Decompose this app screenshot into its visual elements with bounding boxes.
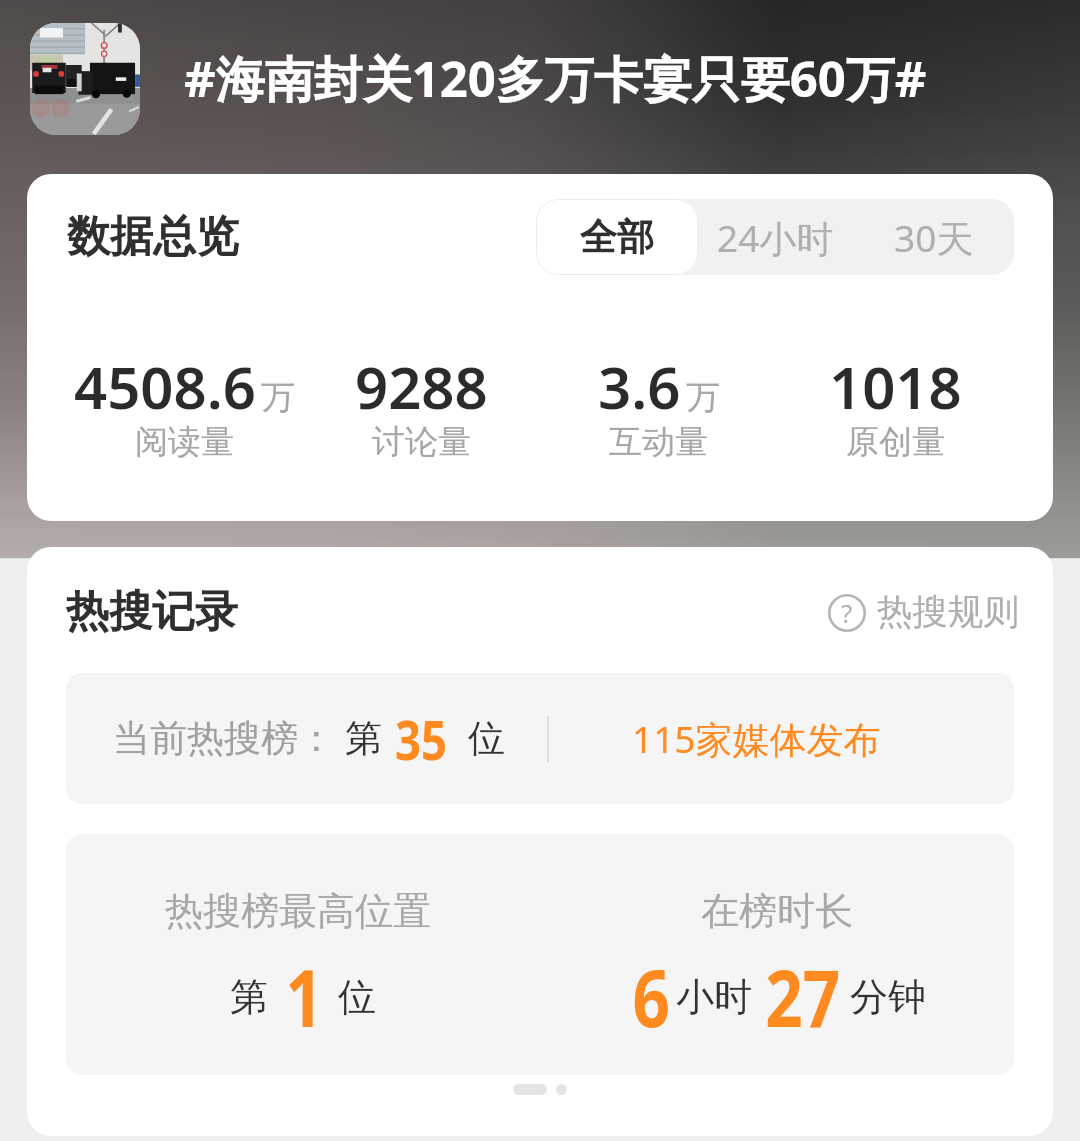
staticText: 第	[230, 973, 268, 1021]
staticText: 24小时	[717, 212, 834, 263]
staticText: 30天	[894, 212, 974, 263]
button[interactable]: 热搜榜最高位置	[66, 834, 540, 1075]
staticText: ?	[841, 595, 853, 630]
staticText: 热搜记录	[66, 585, 238, 639]
button[interactable]: 当前热搜榜：	[66, 673, 1014, 804]
staticText: 全部	[580, 214, 654, 261]
staticText: 万	[261, 376, 295, 419]
staticText: 小时	[676, 973, 752, 1021]
button[interactable]: 3.6	[540, 347, 777, 468]
staticText: 在榜时长	[701, 887, 853, 935]
staticText: 当前热搜榜：	[113, 715, 335, 762]
button[interactable]: #海南封关120多万卡宴只要60万#	[184, 0, 1054, 157]
button[interactable]: 全部	[536, 199, 698, 275]
staticText: 4508.6	[74, 347, 256, 426]
button[interactable]: Topic image	[30, 23, 140, 135]
button[interactable]: ?	[828, 590, 1019, 635]
staticText: 热搜规则	[877, 590, 1019, 635]
staticText: 阅读量	[135, 421, 234, 463]
button[interactable]: 9288	[303, 347, 540, 468]
button[interactable]: 在榜时长	[540, 834, 1014, 1075]
staticText: 互动量	[609, 421, 708, 463]
staticText: 分钟	[850, 973, 926, 1021]
staticText: 6	[633, 944, 670, 1050]
staticText: 27	[765, 944, 841, 1050]
staticText: 1	[286, 944, 323, 1050]
button[interactable]: 30天	[853, 199, 1014, 275]
staticText: 热搜榜最高位置	[165, 887, 431, 935]
staticText: 3.6	[598, 347, 681, 426]
staticText: 数据总览	[67, 210, 239, 264]
staticText: 9288	[355, 347, 488, 426]
staticText: #海南封关120多万卡宴只要60万#	[184, 45, 927, 112]
staticText: 位	[468, 715, 505, 762]
button[interactable]: 4508.6	[66, 347, 303, 468]
button[interactable]: 24小时	[698, 199, 853, 275]
staticText: 万	[686, 376, 720, 419]
staticText: 原创量	[846, 421, 945, 463]
button[interactable]: 1018	[777, 347, 1014, 468]
staticText: 1018	[829, 347, 962, 426]
staticText: 第	[345, 715, 382, 762]
staticText: 115家媒体发布	[632, 713, 881, 764]
staticText: 位	[338, 973, 376, 1021]
staticText: 35	[395, 702, 447, 776]
staticText: 讨论量	[372, 421, 471, 463]
